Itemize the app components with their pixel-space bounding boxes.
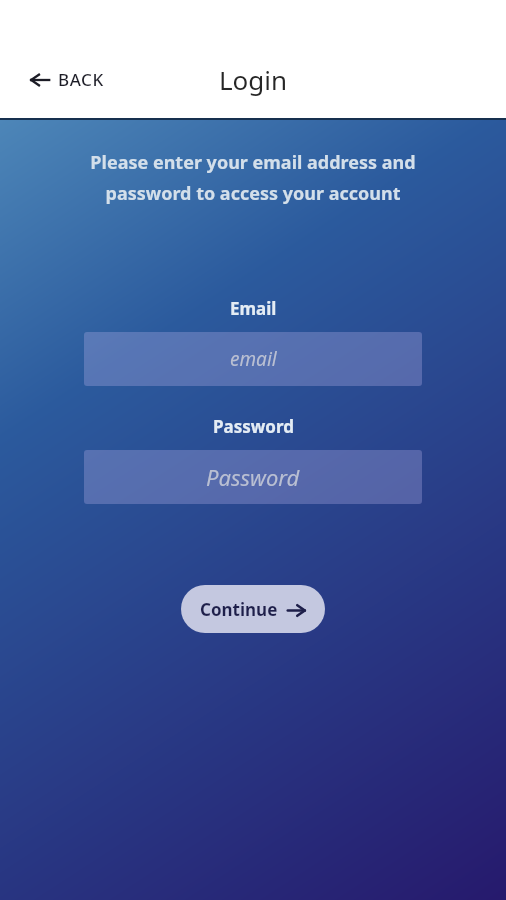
button[interactable]: Password (84, 450, 422, 504)
staticText: Email (230, 297, 277, 320)
staticText: BACK (58, 68, 104, 91)
staticText: Login (219, 62, 288, 97)
button[interactable]: Continue (181, 585, 325, 633)
staticText: email (230, 346, 277, 372)
button[interactable]: BACK (24, 60, 110, 99)
staticText: Continue (200, 598, 278, 621)
staticText: Password (213, 415, 294, 438)
staticText: Please enter your email address and pass… (90, 150, 416, 206)
button[interactable]: email (84, 332, 422, 386)
staticText: Password (206, 462, 300, 492)
